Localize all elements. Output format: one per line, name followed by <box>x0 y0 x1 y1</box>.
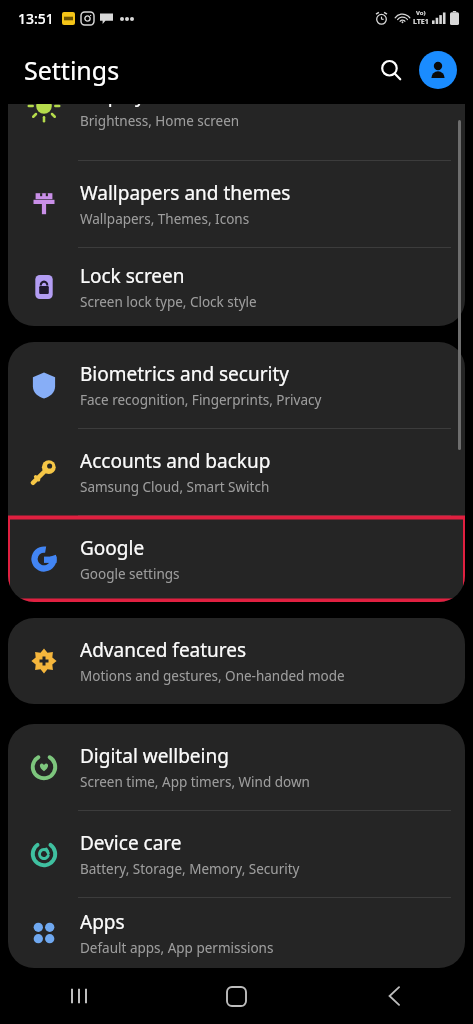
button[interactable]: Search <box>369 48 413 92</box>
staticText: Display <box>80 104 145 108</box>
staticText: Digital wellbeing <box>80 743 229 769</box>
button[interactable]: Advanced features <box>8 618 465 704</box>
button[interactable]: Digital wellbeing <box>8 724 465 810</box>
staticText: Battery, Storage, Memory, Security <box>80 860 300 878</box>
button[interactable]: Recents <box>0 968 157 1024</box>
staticText: Motions and gestures, One-handed mode <box>80 667 345 685</box>
staticText: Settings <box>24 53 120 87</box>
button[interactable]: Lock screen <box>8 248 465 326</box>
staticText: Google <box>80 535 145 561</box>
button[interactable]: Back <box>315 968 473 1024</box>
staticText: Device care <box>80 830 182 856</box>
staticText: Brightness, Home screen <box>80 112 240 130</box>
button[interactable]: Google <box>8 516 465 602</box>
button[interactable]: Wallpapers and themes <box>8 161 465 247</box>
staticText: Biometrics and security <box>80 361 290 387</box>
button[interactable]: Accounts and backup <box>8 429 465 515</box>
button[interactable]: Account <box>419 51 457 89</box>
staticText: Accounts and backup <box>80 448 271 474</box>
staticText: Advanced features <box>80 637 247 663</box>
staticText: Apps <box>80 909 125 935</box>
staticText: Screen time, App timers, Wind down <box>80 773 310 791</box>
button[interactable]: Device care <box>8 811 465 897</box>
button[interactable]: Home <box>157 968 315 1024</box>
staticText: Wallpapers and themes <box>80 180 291 206</box>
staticText: Samsung Cloud, Smart Switch <box>80 478 270 496</box>
staticText: Google settings <box>80 565 180 583</box>
staticText: Screen lock type, Clock style <box>80 293 257 311</box>
staticText: LTE1 <box>413 17 429 27</box>
button[interactable]: Apps <box>8 898 465 968</box>
button[interactable]: Display <box>8 104 465 134</box>
staticText: Lock screen <box>80 263 185 289</box>
staticText: 13:51 <box>18 9 54 28</box>
staticText: Default apps, App permissions <box>80 939 274 957</box>
staticText: Face recognition, Fingerprints, Privacy <box>80 391 322 409</box>
staticText: Wallpapers, Themes, Icons <box>80 210 250 228</box>
staticText: Vo) <box>416 9 426 17</box>
button[interactable]: Biometrics and security <box>8 342 465 428</box>
